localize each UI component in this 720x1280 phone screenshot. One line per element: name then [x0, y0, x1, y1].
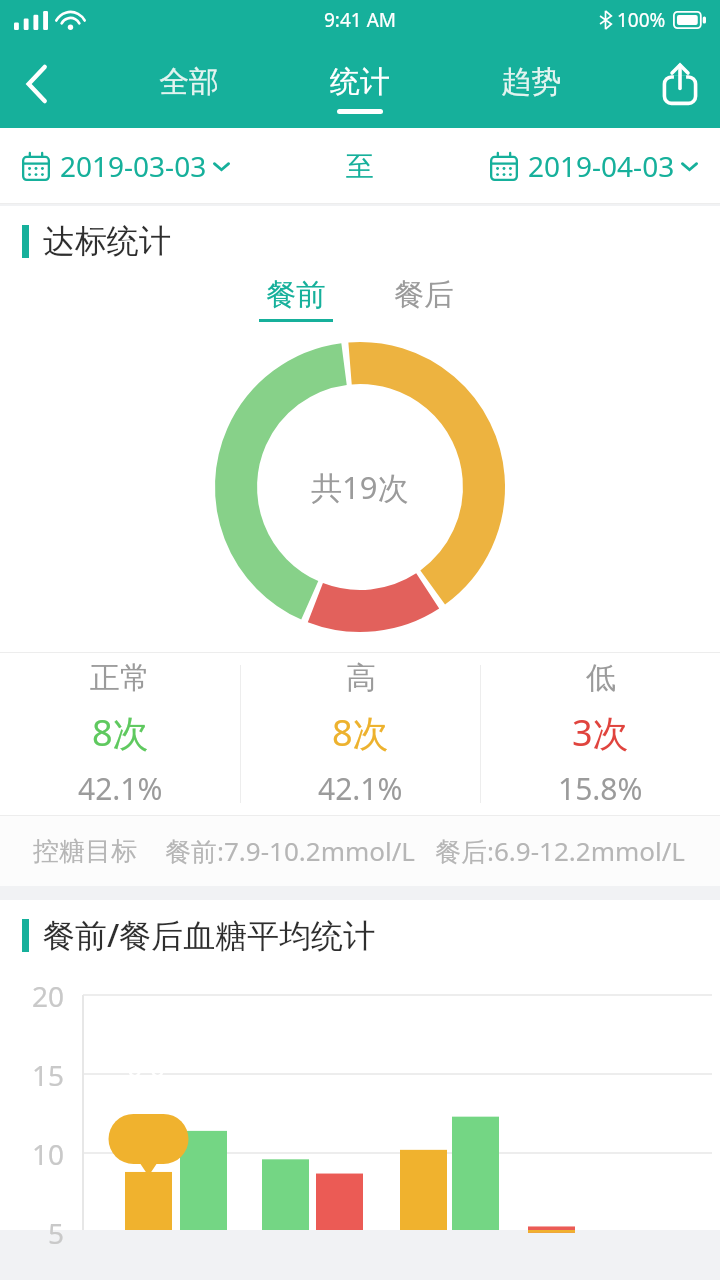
button[interactable]: 正常: [0, 653, 240, 815]
staticText: 控糖目标: [33, 835, 137, 868]
button[interactable]: 统计: [316, 59, 404, 118]
staticText: 2019-03-03: [60, 147, 207, 185]
staticText: 正常: [90, 659, 150, 697]
staticText: 100%: [617, 7, 666, 33]
staticText: 全部: [159, 63, 219, 101]
staticText: 餐后:6.9-12.2mmol/L: [435, 833, 685, 869]
staticText: 8次: [332, 708, 389, 757]
staticText: 8次: [92, 708, 149, 757]
staticText: 2019-04-03: [528, 147, 675, 185]
staticText: 5: [0, 1214, 64, 1252]
staticText: 共19次: [311, 466, 409, 508]
staticText: 低: [586, 659, 616, 697]
staticText: 高: [346, 659, 376, 697]
button[interactable]: 高: [241, 653, 480, 815]
button[interactable]: 至: [338, 141, 382, 192]
staticText: 餐前:7.9-10.2mmol/L: [165, 833, 415, 869]
staticText: 8.8: [127, 1058, 166, 1095]
staticText: 10: [0, 1135, 64, 1173]
staticText: 趋势: [501, 63, 561, 101]
staticText: 餐后: [394, 276, 454, 314]
staticText: 3次: [572, 708, 629, 757]
button[interactable]: Back: [0, 40, 74, 128]
staticText: 达标统计: [43, 221, 171, 261]
button[interactable]: 趋势: [487, 59, 575, 118]
staticText: 餐前: [266, 276, 326, 314]
button[interactable]: 低: [481, 653, 720, 815]
staticText: 42.1%: [318, 768, 403, 809]
button[interactable]: Share: [640, 40, 720, 128]
button[interactable]: 2019-04-03: [490, 147, 698, 185]
staticText: 20: [0, 977, 64, 1015]
button[interactable]: 2019-03-03: [22, 147, 230, 185]
staticText: 42.1%: [78, 768, 163, 809]
button[interactable]: 餐后: [381, 276, 467, 322]
staticText: 至: [346, 149, 374, 184]
staticText: 统计: [330, 63, 390, 101]
staticText: 9:41 AM: [324, 7, 397, 33]
button[interactable]: 全部: [145, 59, 233, 118]
staticText: 15: [0, 1056, 64, 1094]
staticText: 15.8%: [558, 768, 643, 809]
staticText: 餐前/餐后血糖平均统计: [43, 913, 376, 957]
button[interactable]: 餐前: [253, 276, 339, 322]
